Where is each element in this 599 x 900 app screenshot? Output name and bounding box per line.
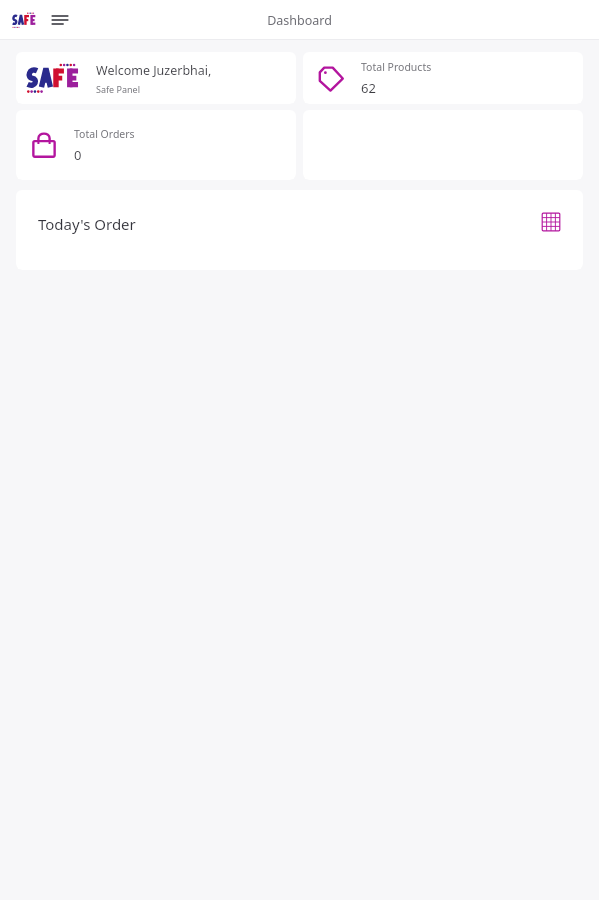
staticText: 62 <box>361 79 376 97</box>
button[interactable]: Open navigation menu <box>50 10 70 30</box>
button[interactable]: SAFE home <box>12 11 38 29</box>
staticText: Dashboard <box>267 12 332 29</box>
button[interactable]: Welcome Juzerbhai, <box>16 52 296 104</box>
staticText: Today's Order <box>38 214 136 234</box>
button[interactable]: Total Orders <box>16 110 296 180</box>
button[interactable]: Today's Order <box>16 190 583 270</box>
staticText: 0 <box>74 146 82 164</box>
staticText: Safe Panel <box>96 83 140 95</box>
staticText: Welcome Juzerbhai, <box>96 62 212 79</box>
button[interactable]: View orders table <box>541 212 561 232</box>
staticText: Total Orders <box>74 127 135 141</box>
button[interactable]: Total Products <box>303 52 583 104</box>
staticText: Total Products <box>361 60 432 74</box>
